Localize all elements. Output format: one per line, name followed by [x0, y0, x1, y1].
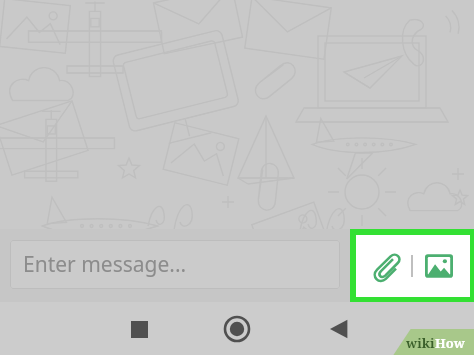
button[interactable]: Enter message... [10, 240, 340, 289]
button[interactable]: Attach file [367, 246, 407, 286]
button[interactable]: Back [322, 312, 356, 346]
staticText: How [435, 334, 465, 352]
staticText: Enter message... [23, 250, 187, 279]
button[interactable]: Home [219, 311, 255, 347]
staticText: wiki [406, 334, 435, 352]
button[interactable]: Recents [122, 312, 156, 346]
button[interactable]: Attach image [419, 246, 459, 286]
